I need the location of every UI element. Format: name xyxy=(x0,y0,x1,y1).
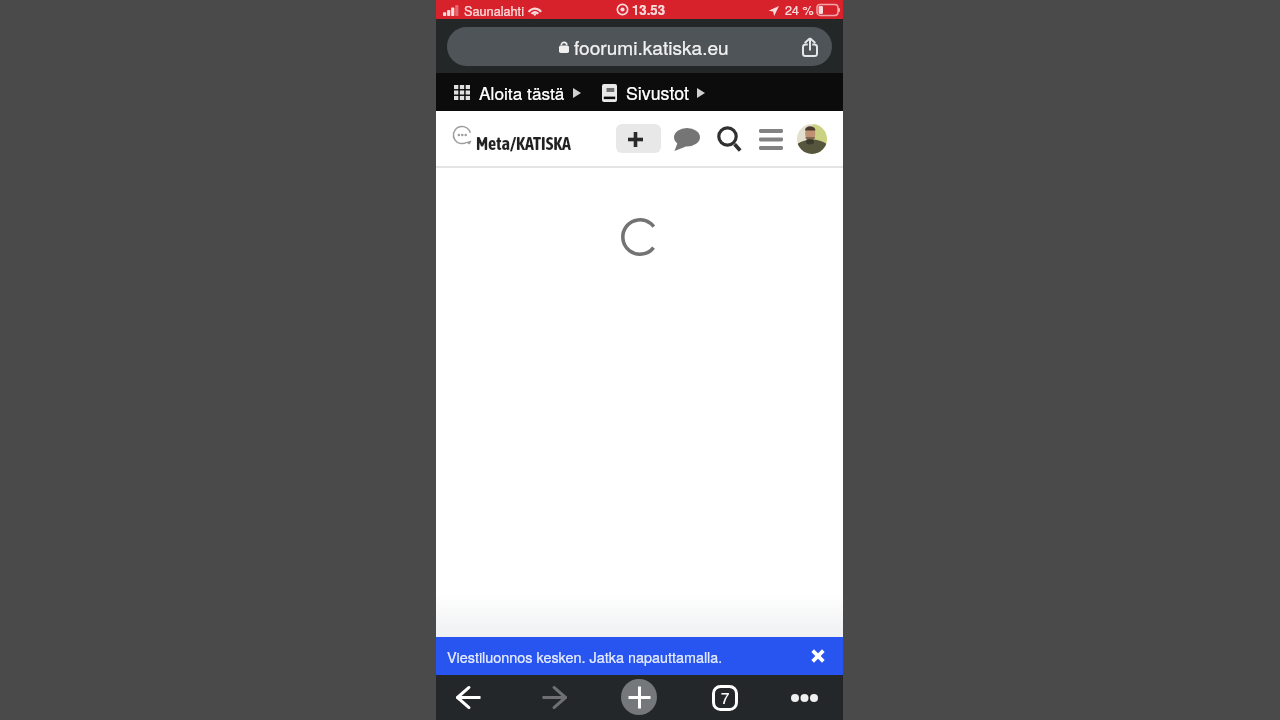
button[interactable]: More xyxy=(782,675,826,720)
button[interactable]: Back xyxy=(447,675,491,720)
button[interactable]: Share xyxy=(797,34,823,60)
staticText: Saunalahti xyxy=(464,1,524,19)
button[interactable]: Search xyxy=(714,124,744,154)
staticText: 24 % xyxy=(785,1,814,19)
other: Forward xyxy=(541,686,567,709)
button[interactable]: Close xyxy=(805,643,831,669)
staticText: Sivustot xyxy=(626,80,689,105)
button[interactable]: Profile xyxy=(797,124,827,154)
button[interactable]: foorumi.katiska.eu xyxy=(447,27,832,66)
button[interactable]: Aloita tästä xyxy=(454,80,581,105)
staticText: Meta/KATISKA xyxy=(476,133,571,154)
other: Back xyxy=(456,686,482,709)
button[interactable]: Viestiluonnos kesken. Jatka napauttamall… xyxy=(436,637,843,675)
button[interactable]: Tabs xyxy=(703,675,747,720)
staticText: Aloita tästä xyxy=(479,80,565,105)
button[interactable]: Meta/KATISKA xyxy=(447,111,587,163)
button[interactable]: Messages xyxy=(672,124,702,154)
button[interactable]: New tab xyxy=(621,679,657,715)
button[interactable]: Forward xyxy=(532,675,576,720)
button[interactable]: New topic xyxy=(616,124,661,153)
staticText: foorumi.katiska.eu xyxy=(574,33,729,60)
staticText: 7 xyxy=(721,687,730,708)
button[interactable]: Sivustot xyxy=(602,80,705,105)
button[interactable]: Menu xyxy=(756,124,786,154)
staticText: Viestiluonnos kesken. Jatka napauttamall… xyxy=(447,646,723,667)
staticText: 13.53 xyxy=(632,0,665,19)
